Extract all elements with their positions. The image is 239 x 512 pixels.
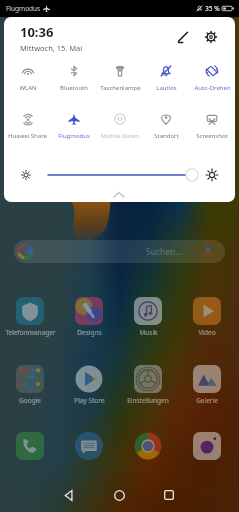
staticText: Video — [198, 328, 216, 337]
button[interactable]: Taschenlampe — [97, 51, 143, 92]
staticText: Google — [19, 396, 41, 405]
button[interactable]: Auto-Drehen — [189, 51, 235, 92]
button[interactable]: App — [179, 432, 235, 460]
button[interactable]: Galerie — [179, 365, 235, 405]
button[interactable]: Übersicht — [157, 483, 181, 507]
button[interactable]: Musik — [120, 297, 176, 337]
staticText: Mittwoch, 15. Mai — [20, 43, 83, 53]
button[interactable]: Mobile Daten — [97, 99, 143, 140]
button[interactable]: Standort — [143, 99, 189, 140]
button[interactable]: Flugmodus — [51, 99, 97, 140]
button[interactable]: Huawei Share — [4, 99, 51, 140]
button[interactable]: Zurück — [57, 483, 81, 507]
button[interactable]: Video — [179, 297, 235, 337]
staticText: Telefonmanager — [5, 328, 56, 337]
staticText: Musik — [139, 328, 158, 337]
staticText: Einstellungen — [127, 396, 169, 405]
button[interactable]: Designs — [61, 297, 117, 337]
button[interactable]: WLAN — [4, 51, 51, 92]
button[interactable]: Telefonmanager — [2, 297, 58, 337]
staticText: Suchen... — [146, 246, 183, 258]
button[interactable]: Google — [2, 365, 58, 405]
staticText: Flugmodus — [58, 132, 90, 140]
button[interactable]: App — [2, 432, 58, 460]
button[interactable]: Lautlos — [143, 51, 189, 92]
button[interactable]: Helligkeit — [4, 165, 235, 185]
staticText: Galerie — [196, 396, 218, 405]
staticText: 35 % — [205, 4, 220, 13]
staticText: Lautlos — [156, 84, 177, 92]
button[interactable]: Einstellungen — [198, 24, 224, 50]
staticText: WLAN — [19, 84, 37, 92]
button[interactable]: Bluetooth — [51, 51, 97, 92]
staticText: Taschenlampe — [100, 84, 141, 92]
staticText: Flugmodus — [6, 4, 41, 13]
staticText: Standort — [154, 132, 179, 140]
staticText: Play Store — [74, 396, 105, 405]
button[interactable]: Suchen... — [14, 240, 225, 263]
staticText: Auto-Drehen — [194, 84, 231, 92]
button[interactable]: Einstellungen — [120, 365, 176, 405]
button[interactable]: App — [61, 432, 117, 460]
button[interactable]: Play Store — [61, 365, 117, 405]
button[interactable]: App — [120, 432, 176, 460]
button[interactable]: Screenshot — [189, 99, 235, 140]
staticText: Mobile Daten — [101, 132, 139, 140]
staticText: Designs — [77, 328, 102, 337]
staticText: Bluetooth — [60, 84, 88, 92]
button[interactable]: Startbildschirm — [107, 483, 131, 507]
staticText: 10:36 — [20, 23, 54, 41]
staticText: Huawei Share — [8, 132, 47, 140]
staticText: Screenshot — [196, 132, 228, 140]
button[interactable]: Bearbeiten — [170, 24, 196, 50]
